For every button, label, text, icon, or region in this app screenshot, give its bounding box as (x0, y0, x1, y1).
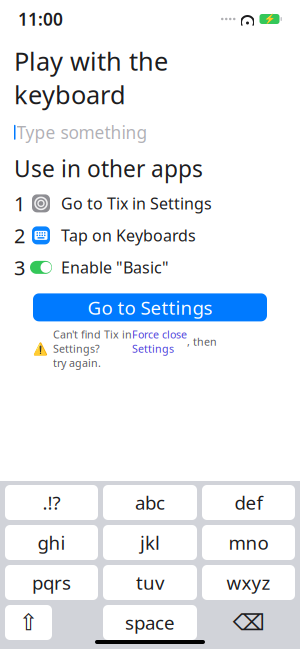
staticText: abc (135, 490, 165, 515)
button[interactable]: def (202, 485, 295, 520)
staticText: ⇧ (19, 610, 38, 635)
staticText: mno (228, 530, 268, 555)
staticText: Go to Settings (87, 295, 212, 320)
staticText: Can't find Tix in Settings? (53, 327, 132, 356)
button[interactable]: jkl (103, 525, 197, 560)
button[interactable]: Shift (5, 605, 52, 640)
staticText: Go to Tix in Settings (61, 193, 212, 214)
staticText: ⚡ (263, 14, 275, 24)
staticText: Force close Settings (132, 327, 187, 356)
staticText: Use in other apps (14, 153, 203, 183)
staticText: def (234, 490, 262, 515)
staticText: 11:00 (18, 7, 63, 30)
staticText: wxyz (226, 570, 270, 595)
button[interactable]: tuv (103, 565, 197, 600)
staticText: 1 (14, 190, 25, 217)
button[interactable]: space (103, 605, 197, 640)
staticText: try again. (53, 356, 101, 370)
staticText: Tap on Keyboards (61, 225, 196, 246)
button[interactable]: Delete (202, 605, 295, 640)
staticText: ghi (37, 530, 65, 555)
staticText: tuv (136, 570, 164, 595)
button[interactable]: pqrs (5, 565, 98, 600)
staticText: Enable "Basic" (61, 257, 169, 278)
button[interactable]: Force close Settings (132, 327, 187, 356)
staticText: ⌫ (232, 610, 264, 635)
button[interactable]: abc (103, 485, 197, 520)
staticText: jkl (140, 530, 160, 555)
staticText: ⚠️ (33, 342, 48, 355)
staticText: space (125, 610, 175, 635)
staticText: .!? (42, 490, 60, 515)
staticText: , then (187, 334, 217, 349)
button[interactable]: Go to Settings (33, 293, 267, 321)
staticText: Type something (16, 121, 147, 144)
staticText: 2 (14, 222, 25, 249)
staticText: pqrs (32, 570, 71, 595)
button[interactable]: mno (202, 525, 295, 560)
button[interactable]: ghi (5, 525, 98, 560)
button[interactable]: .!? (5, 485, 98, 520)
staticText: Play with the keyboard (14, 44, 168, 111)
button[interactable]: wxyz (202, 565, 295, 600)
staticText: 3 (14, 254, 25, 281)
